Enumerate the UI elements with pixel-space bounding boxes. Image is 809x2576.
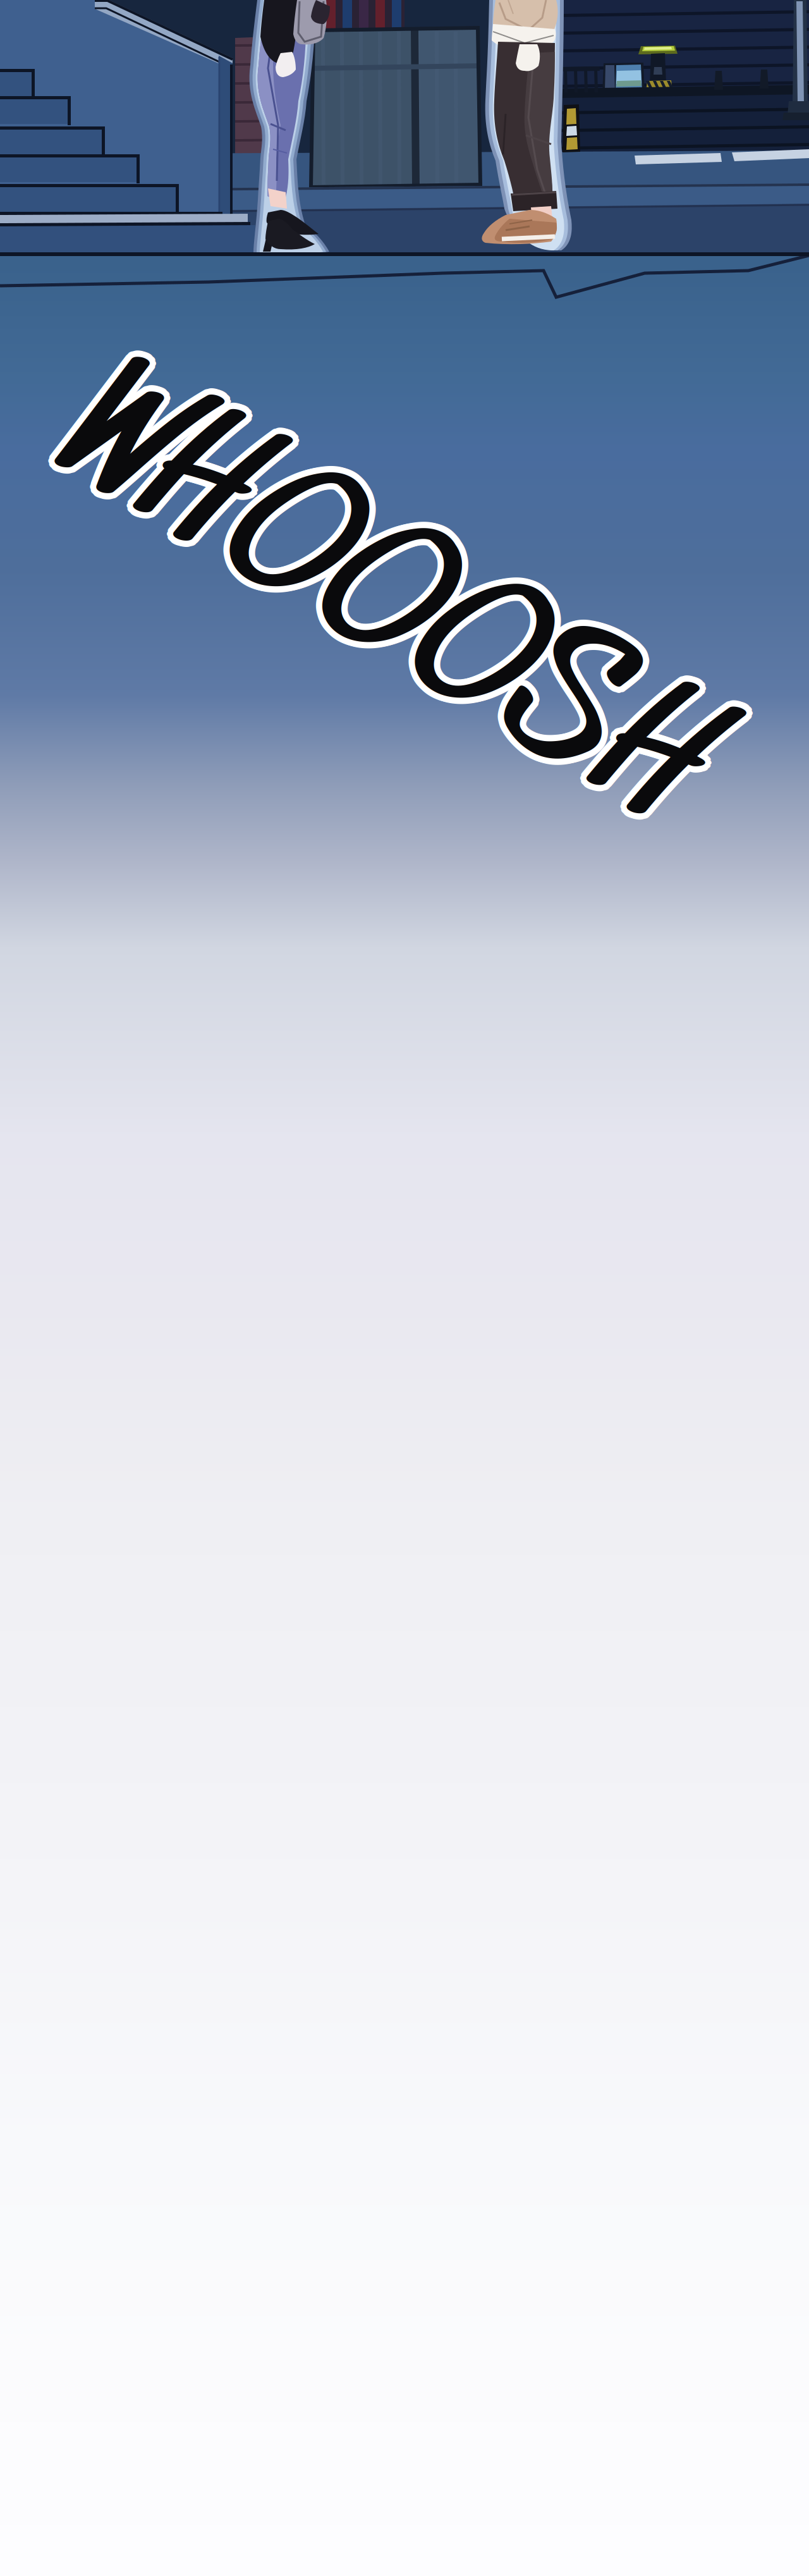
staticText: WHOOOSH (21, 501, 741, 718)
staticText: WHOOOSH (24, 495, 745, 712)
staticText: WHOOOSH (27, 490, 748, 707)
staticText: WHOOOSH (30, 495, 751, 712)
staticText: WHOOOSH (24, 489, 745, 706)
staticText: WHOOOSH (18, 495, 738, 712)
staticText: WHOOOSH (30, 492, 750, 709)
staticText: WHOOOSH (19, 499, 739, 716)
staticText: WHOOOSH (19, 492, 739, 709)
staticText: WHOOOSH (24, 502, 745, 719)
staticText: WHOOOSH (27, 501, 748, 718)
staticText: WHOOOSH (21, 490, 741, 707)
staticText: WHOOOSH (30, 499, 750, 716)
